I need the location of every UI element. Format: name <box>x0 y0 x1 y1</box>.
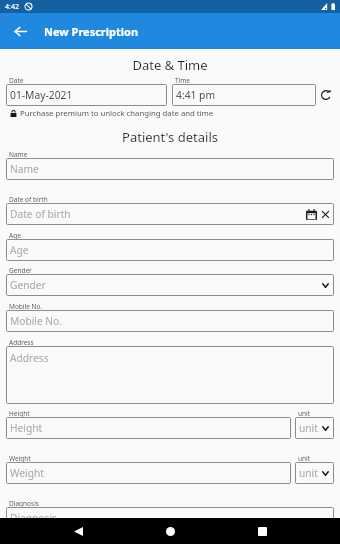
staticText: Purchase premium to unlock changing date… <box>20 108 214 119</box>
staticText: unit <box>299 466 318 480</box>
button[interactable]: Name <box>6 158 334 180</box>
button[interactable]: Back <box>62 518 94 544</box>
staticText: unit <box>298 409 311 418</box>
button[interactable]: Height <box>6 417 291 439</box>
button[interactable]: 4:41 pm <box>172 84 316 106</box>
staticText: Date of birth <box>10 207 71 221</box>
staticText: 4:42 <box>5 2 19 12</box>
staticText: Mobile No. <box>10 314 62 328</box>
staticText: Patient's details <box>0 128 340 146</box>
button[interactable]: Recents <box>246 518 278 544</box>
button[interactable]: Home <box>154 518 186 544</box>
staticText: New Prescription <box>44 24 139 39</box>
staticText: Name <box>10 162 39 176</box>
staticText: Age <box>10 243 29 257</box>
staticText: Address <box>9 338 34 347</box>
staticText: Gender <box>9 266 32 275</box>
button[interactable]: unit <box>295 462 334 484</box>
staticText: Height <box>9 409 30 418</box>
staticText: unit <box>299 421 318 435</box>
staticText: Date & Time <box>0 56 340 74</box>
staticText: Date of birth <box>9 195 48 204</box>
staticText: Address <box>10 351 49 365</box>
staticText: 01-May-2021 <box>10 88 73 102</box>
staticText: 4:41 pm <box>176 88 216 102</box>
button[interactable]: Pick date <box>305 208 317 220</box>
staticText: Name <box>9 150 28 159</box>
button[interactable]: Gender <box>6 274 334 296</box>
staticText: Mobile No. <box>9 302 43 311</box>
staticText: Time <box>175 76 191 85</box>
button[interactable]: Clear date <box>319 208 331 220</box>
button[interactable]: Address <box>6 346 334 404</box>
staticText: Diagnosis <box>10 511 57 525</box>
staticText: unit <box>298 454 311 463</box>
button[interactable]: 01-May-2021 <box>6 84 167 106</box>
staticText: Weight <box>10 466 44 480</box>
staticText: Gender <box>10 278 46 292</box>
button[interactable]: Refresh time <box>315 84 337 106</box>
button[interactable]: Mobile No. <box>6 310 334 332</box>
button[interactable]: Age <box>6 239 334 261</box>
staticText: Date <box>9 76 24 85</box>
button[interactable]: Date of birth <box>6 203 334 225</box>
button[interactable]: Back <box>0 13 40 49</box>
staticText: Height <box>10 421 43 435</box>
button[interactable]: Weight <box>6 462 291 484</box>
staticText: Age <box>9 231 21 240</box>
button[interactable]: Diagnosis <box>6 507 334 529</box>
staticText: Weight <box>9 454 31 463</box>
button[interactable]: unit <box>295 417 334 439</box>
staticText: Diagnosis <box>9 499 39 508</box>
